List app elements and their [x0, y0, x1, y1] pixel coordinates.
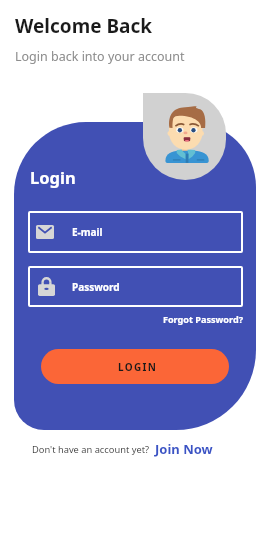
button[interactable]: Password [28, 266, 243, 307]
staticText: Login [30, 166, 76, 188]
staticText: E-mail [72, 225, 103, 239]
staticText: Don't have an account yet? [32, 443, 150, 456]
staticText: LOGIN [118, 360, 158, 374]
button[interactable]: LOGIN [41, 349, 229, 384]
staticText: Login back into your account [15, 48, 185, 65]
button[interactable]: Forgot Password? [28, 313, 243, 325]
staticText: Password [72, 280, 120, 294]
staticText: Welcome Back [15, 13, 153, 39]
button[interactable]: E-mail [28, 211, 243, 253]
other: Password [38, 277, 55, 296]
other: E-mail [36, 225, 54, 239]
button[interactable]: Join Now [155, 440, 213, 458]
